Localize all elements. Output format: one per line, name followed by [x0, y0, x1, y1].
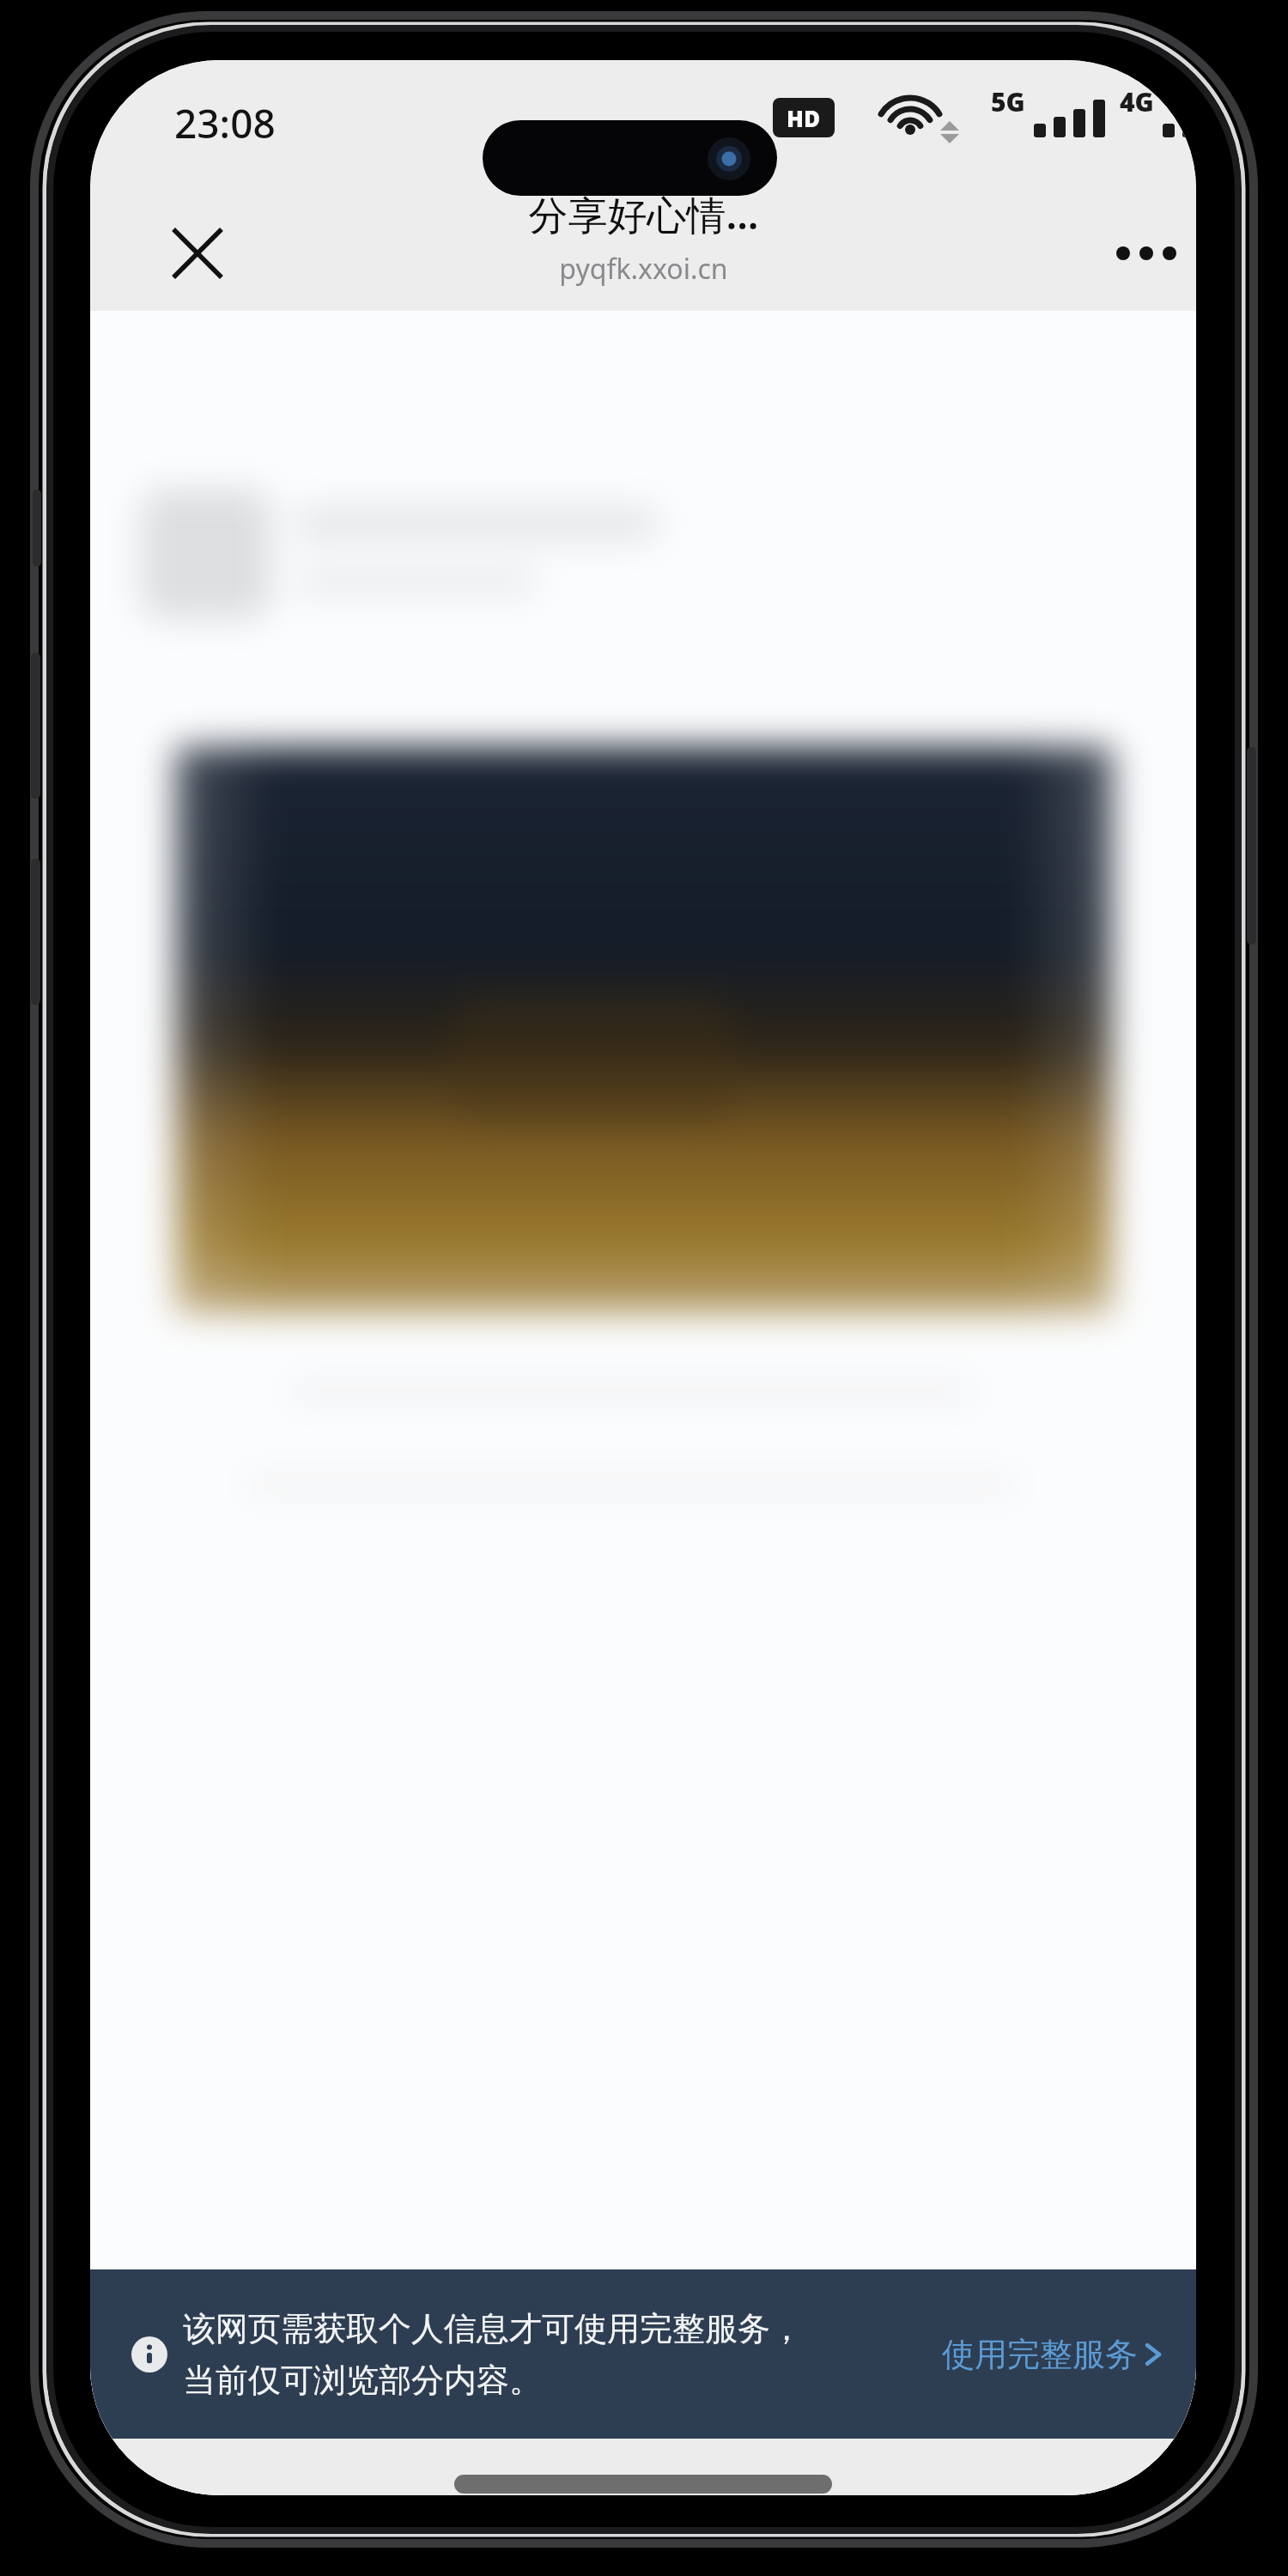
staticText: 5G [991, 84, 1025, 115]
staticText: 4G [1120, 84, 1154, 115]
button[interactable]: 使用完整服务 [937, 2325, 1167, 2384]
staticText: 当前仅可浏览部分内容。 [183, 2360, 542, 2401]
button[interactable]: 更多 [1099, 206, 1194, 301]
staticText: 分享好心情... [528, 187, 759, 241]
button[interactable]: 关闭 [150, 206, 245, 301]
staticText: HD [787, 103, 821, 133]
staticText: pyqfk.xxoi.cn [559, 250, 728, 288]
staticText: 该网页需获取个人信息才可使用完整服务， [183, 2308, 803, 2349]
staticText: 23:08 [174, 96, 276, 143]
staticText: 使用完整服务 [942, 2334, 1138, 2375]
